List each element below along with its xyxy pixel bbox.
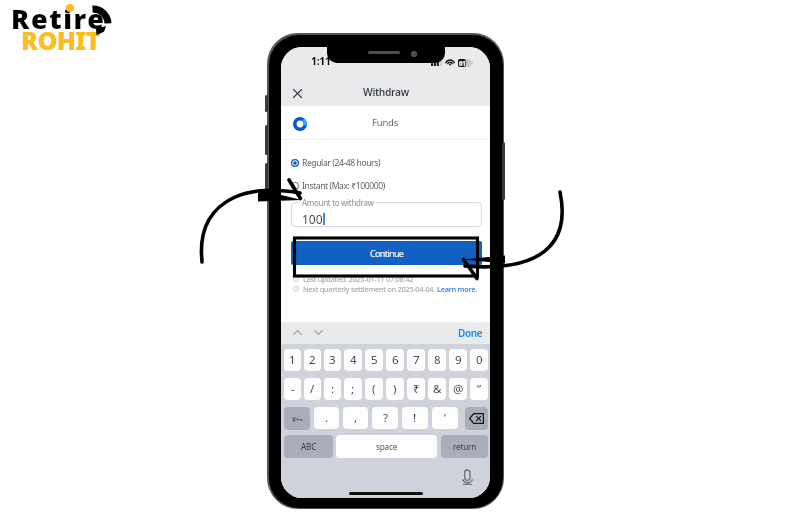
staticText: - bbox=[291, 381, 295, 397]
staticText: Next quarterly settlement on 2025-04-04. bbox=[303, 284, 437, 294]
button[interactable]: 7 bbox=[407, 349, 425, 371]
staticText: 8 bbox=[434, 352, 441, 368]
staticText: Retire bbox=[11, 0, 106, 37]
button[interactable]: ( bbox=[365, 378, 383, 400]
staticText: & bbox=[433, 381, 442, 397]
button[interactable]: Close bbox=[284, 80, 310, 106]
button[interactable]: space bbox=[336, 435, 437, 458]
staticText: ₹ bbox=[413, 381, 420, 397]
button[interactable]: 2 bbox=[304, 349, 321, 371]
staticText: ’ bbox=[444, 410, 447, 426]
button[interactable]: 1 bbox=[284, 349, 301, 371]
button[interactable]: . bbox=[314, 407, 339, 429]
staticText: ROHIT bbox=[21, 23, 101, 57]
button[interactable]: ₹ bbox=[407, 378, 425, 400]
staticText: / bbox=[310, 381, 315, 397]
staticText: 1:11 bbox=[311, 54, 331, 68]
staticText: space bbox=[376, 441, 398, 452]
button[interactable]: : bbox=[324, 378, 341, 400]
button[interactable]: ABC bbox=[284, 435, 333, 458]
staticText: Done bbox=[458, 326, 483, 340]
staticText: Amount to withdraw bbox=[302, 197, 374, 208]
button[interactable]: / bbox=[304, 378, 321, 400]
button[interactable]: ! bbox=[402, 407, 428, 429]
staticText: Withdraw bbox=[363, 85, 409, 99]
staticText: ; bbox=[351, 381, 355, 397]
staticText: ? bbox=[383, 410, 388, 426]
staticText: Funds bbox=[372, 116, 399, 129]
staticText: 2 bbox=[309, 352, 316, 368]
button[interactable]: 5 bbox=[365, 349, 383, 371]
staticText: 100 bbox=[302, 211, 323, 227]
staticText: 5 bbox=[371, 352, 378, 368]
button[interactable]: Learn more. bbox=[437, 284, 477, 294]
button[interactable]: Continue bbox=[291, 241, 482, 265]
staticText: @ bbox=[453, 381, 464, 397]
button[interactable] bbox=[291, 202, 482, 227]
staticText: 6 bbox=[392, 352, 399, 368]
staticText: ) bbox=[393, 381, 397, 397]
button[interactable]: Delete bbox=[465, 407, 488, 430]
staticText: 3 bbox=[329, 352, 336, 368]
staticText: ! bbox=[413, 410, 417, 426]
staticText: 7 bbox=[413, 352, 420, 368]
staticText: return bbox=[453, 441, 477, 452]
button[interactable]: ’ bbox=[432, 407, 458, 429]
button[interactable]: 4 bbox=[344, 349, 362, 371]
button[interactable]: Previous field bbox=[287, 324, 307, 341]
button[interactable]: return bbox=[441, 435, 488, 458]
button[interactable]: @ bbox=[449, 378, 467, 400]
staticText: 4 bbox=[350, 352, 357, 368]
staticText: 1 bbox=[289, 352, 296, 368]
staticText: ” bbox=[477, 381, 482, 397]
button[interactable]: 0 bbox=[470, 349, 488, 371]
button[interactable]: 9 bbox=[449, 349, 467, 371]
staticText: . bbox=[325, 410, 329, 426]
staticText: #+= bbox=[292, 415, 303, 423]
staticText: Last updated: 2025-01-11 07:08:42 bbox=[303, 274, 414, 284]
staticText: Continue bbox=[370, 247, 404, 259]
staticText: ( bbox=[372, 381, 376, 397]
staticText: 9 bbox=[455, 352, 462, 368]
staticText: , bbox=[354, 410, 358, 426]
button[interactable]: Dictation bbox=[458, 466, 477, 489]
staticText: 0 bbox=[476, 352, 483, 368]
button[interactable]: , bbox=[343, 407, 368, 429]
button[interactable]: Regular (24-48 hours) bbox=[291, 156, 381, 170]
button[interactable]: Next field bbox=[308, 324, 328, 341]
button[interactable]: 8 bbox=[428, 349, 446, 371]
staticText: ABC bbox=[301, 441, 317, 452]
button[interactable]: Instant (Max: ₹100000) bbox=[291, 179, 385, 193]
staticText: 61 bbox=[459, 59, 466, 67]
button[interactable]: #+= bbox=[284, 407, 310, 430]
staticText: : bbox=[331, 381, 335, 397]
staticText: Regular (24-48 hours) bbox=[302, 157, 381, 169]
button[interactable]: ? bbox=[372, 407, 398, 429]
button[interactable]: - bbox=[284, 378, 301, 400]
button[interactable]: ) bbox=[386, 378, 404, 400]
button[interactable]: 6 bbox=[386, 349, 404, 371]
button[interactable]: & bbox=[428, 378, 446, 400]
button[interactable]: ; bbox=[344, 378, 362, 400]
button[interactable]: 3 bbox=[324, 349, 341, 371]
button[interactable]: ” bbox=[470, 378, 488, 400]
button[interactable]: Done bbox=[455, 323, 486, 342]
staticText: Instant (Max: ₹100000) bbox=[302, 180, 385, 192]
